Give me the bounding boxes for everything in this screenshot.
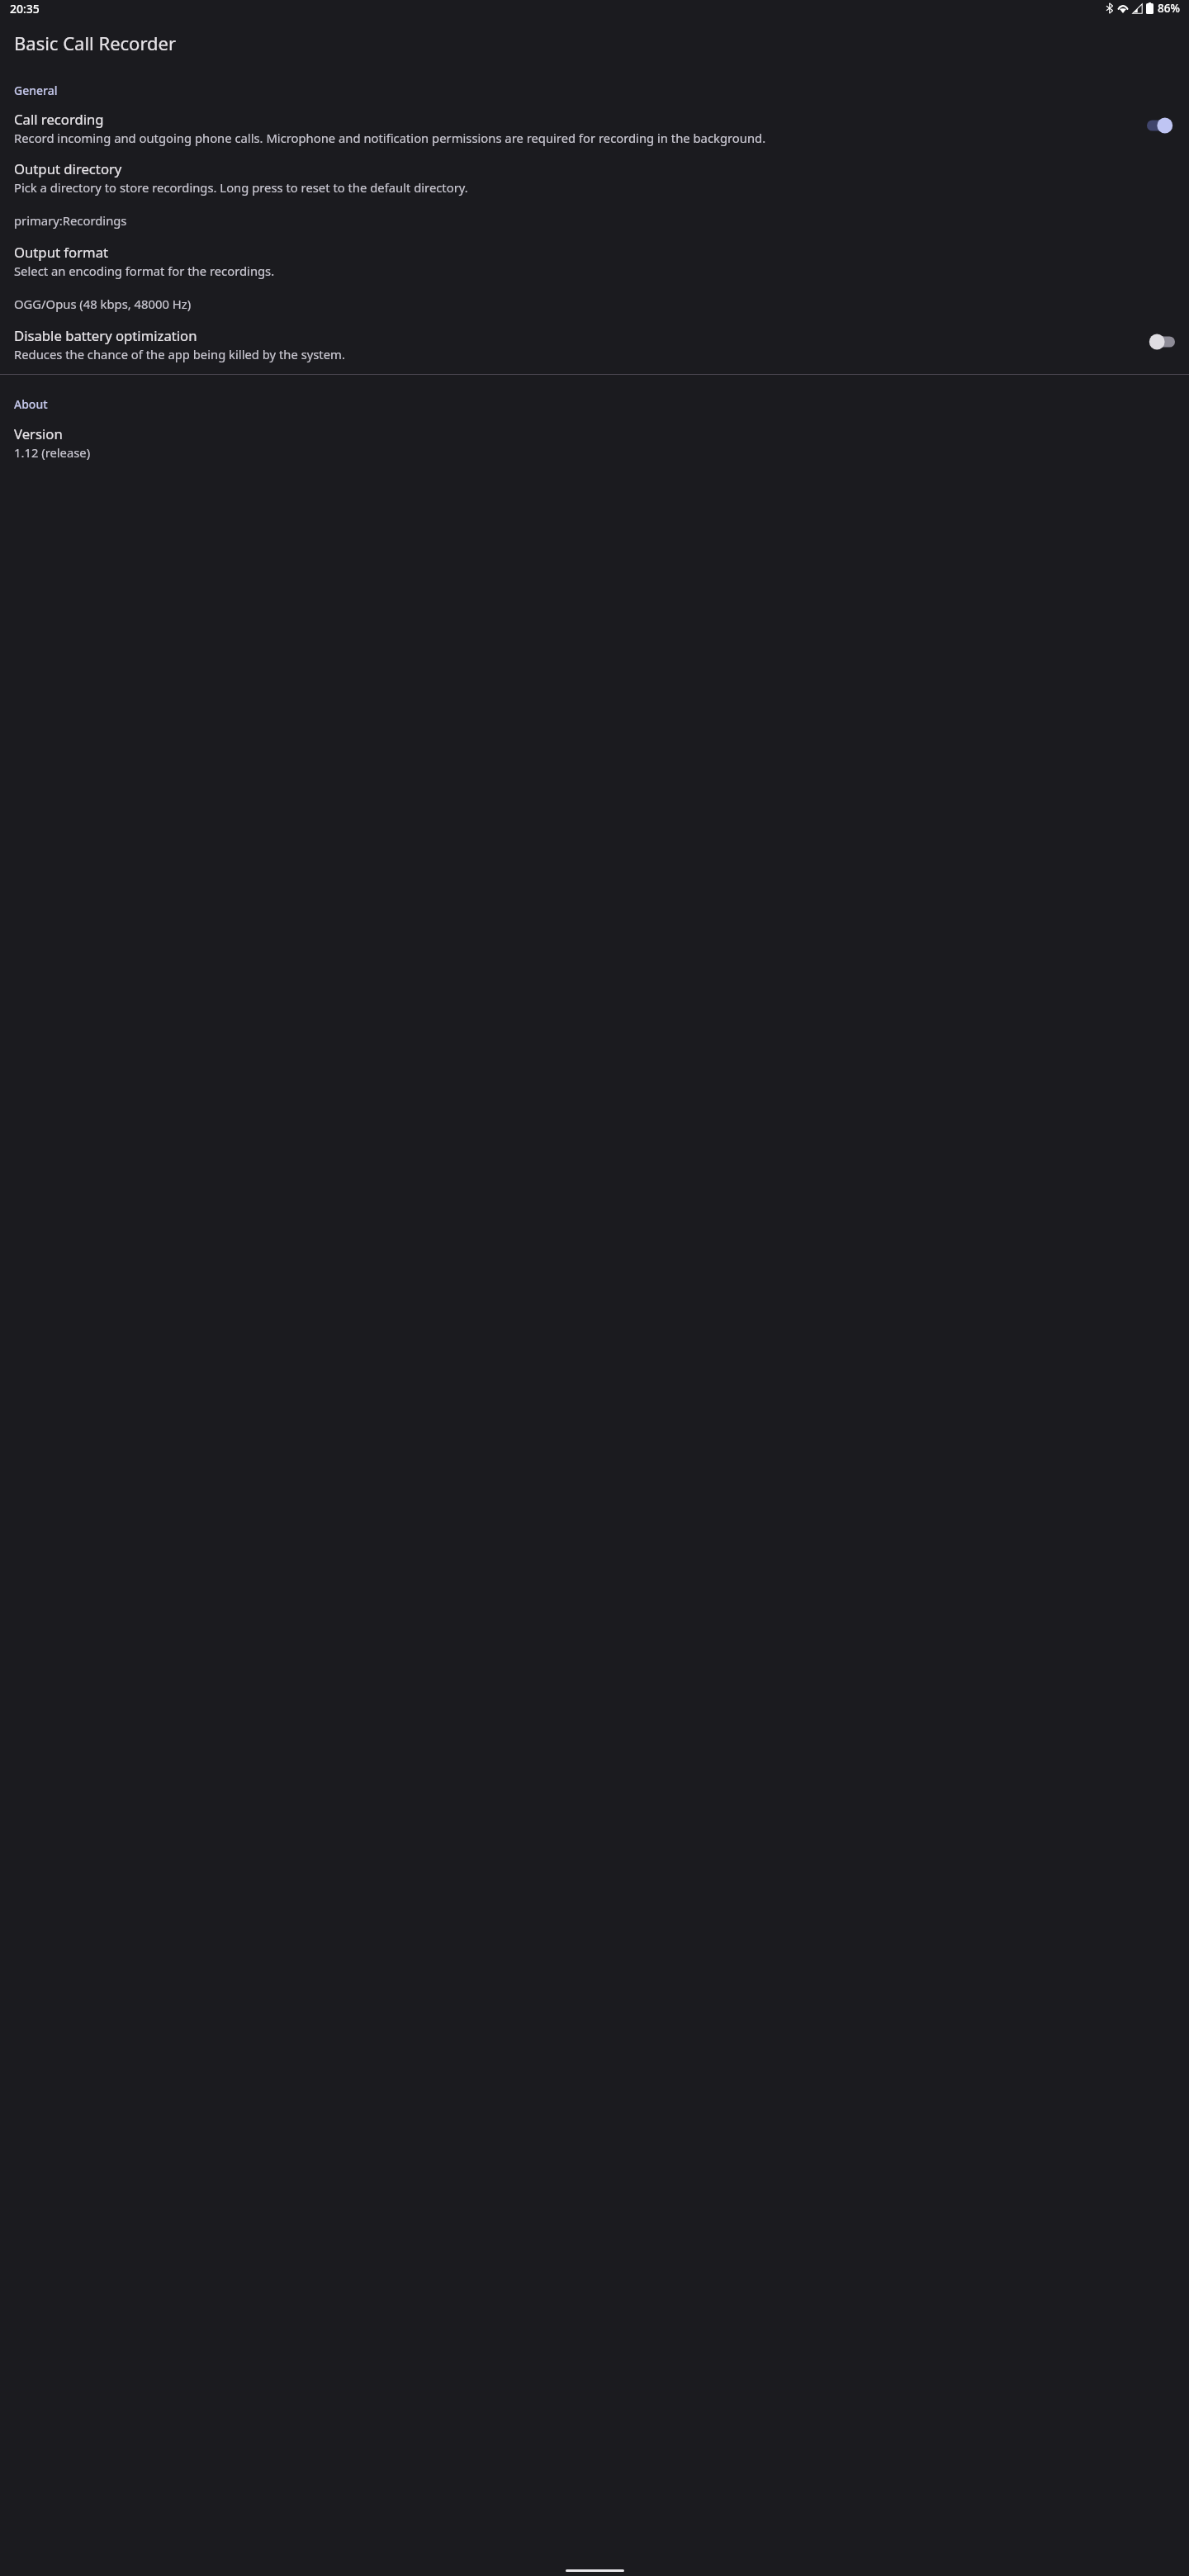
staticText: 86%: [1158, 1, 1180, 16]
button[interactable]: Call recording: [0, 110, 1189, 146]
staticText: 1.12 (release): [14, 444, 91, 461]
button[interactable]: Version: [0, 424, 1189, 461]
button[interactable]: Disable battery optimization off: [1147, 331, 1175, 353]
staticText: Output directory: [14, 159, 122, 178]
staticText: Call recording: [14, 110, 104, 129]
staticText: Pick a directory to store recordings. Lo…: [14, 179, 468, 229]
staticText: Select an encoding format for the record…: [14, 263, 275, 312]
staticText: Record incoming and outgoing phone calls…: [14, 130, 766, 146]
staticText: Basic Call Recorder: [14, 31, 177, 55]
staticText: Reduces the chance of the app being kill…: [14, 346, 345, 362]
staticText: 20:35: [10, 1, 40, 17]
staticText: Output format: [14, 243, 109, 262]
staticText: About: [14, 396, 48, 412]
button[interactable]: Output format: [0, 243, 1189, 312]
staticText: Disable battery optimization: [14, 326, 197, 345]
button[interactable]: Output directory: [0, 159, 1189, 229]
staticText: General: [14, 83, 58, 98]
staticText: Version: [14, 424, 63, 443]
button[interactable]: Disable battery optimization: [0, 326, 1189, 362]
button[interactable]: Call recording on: [1147, 115, 1175, 136]
